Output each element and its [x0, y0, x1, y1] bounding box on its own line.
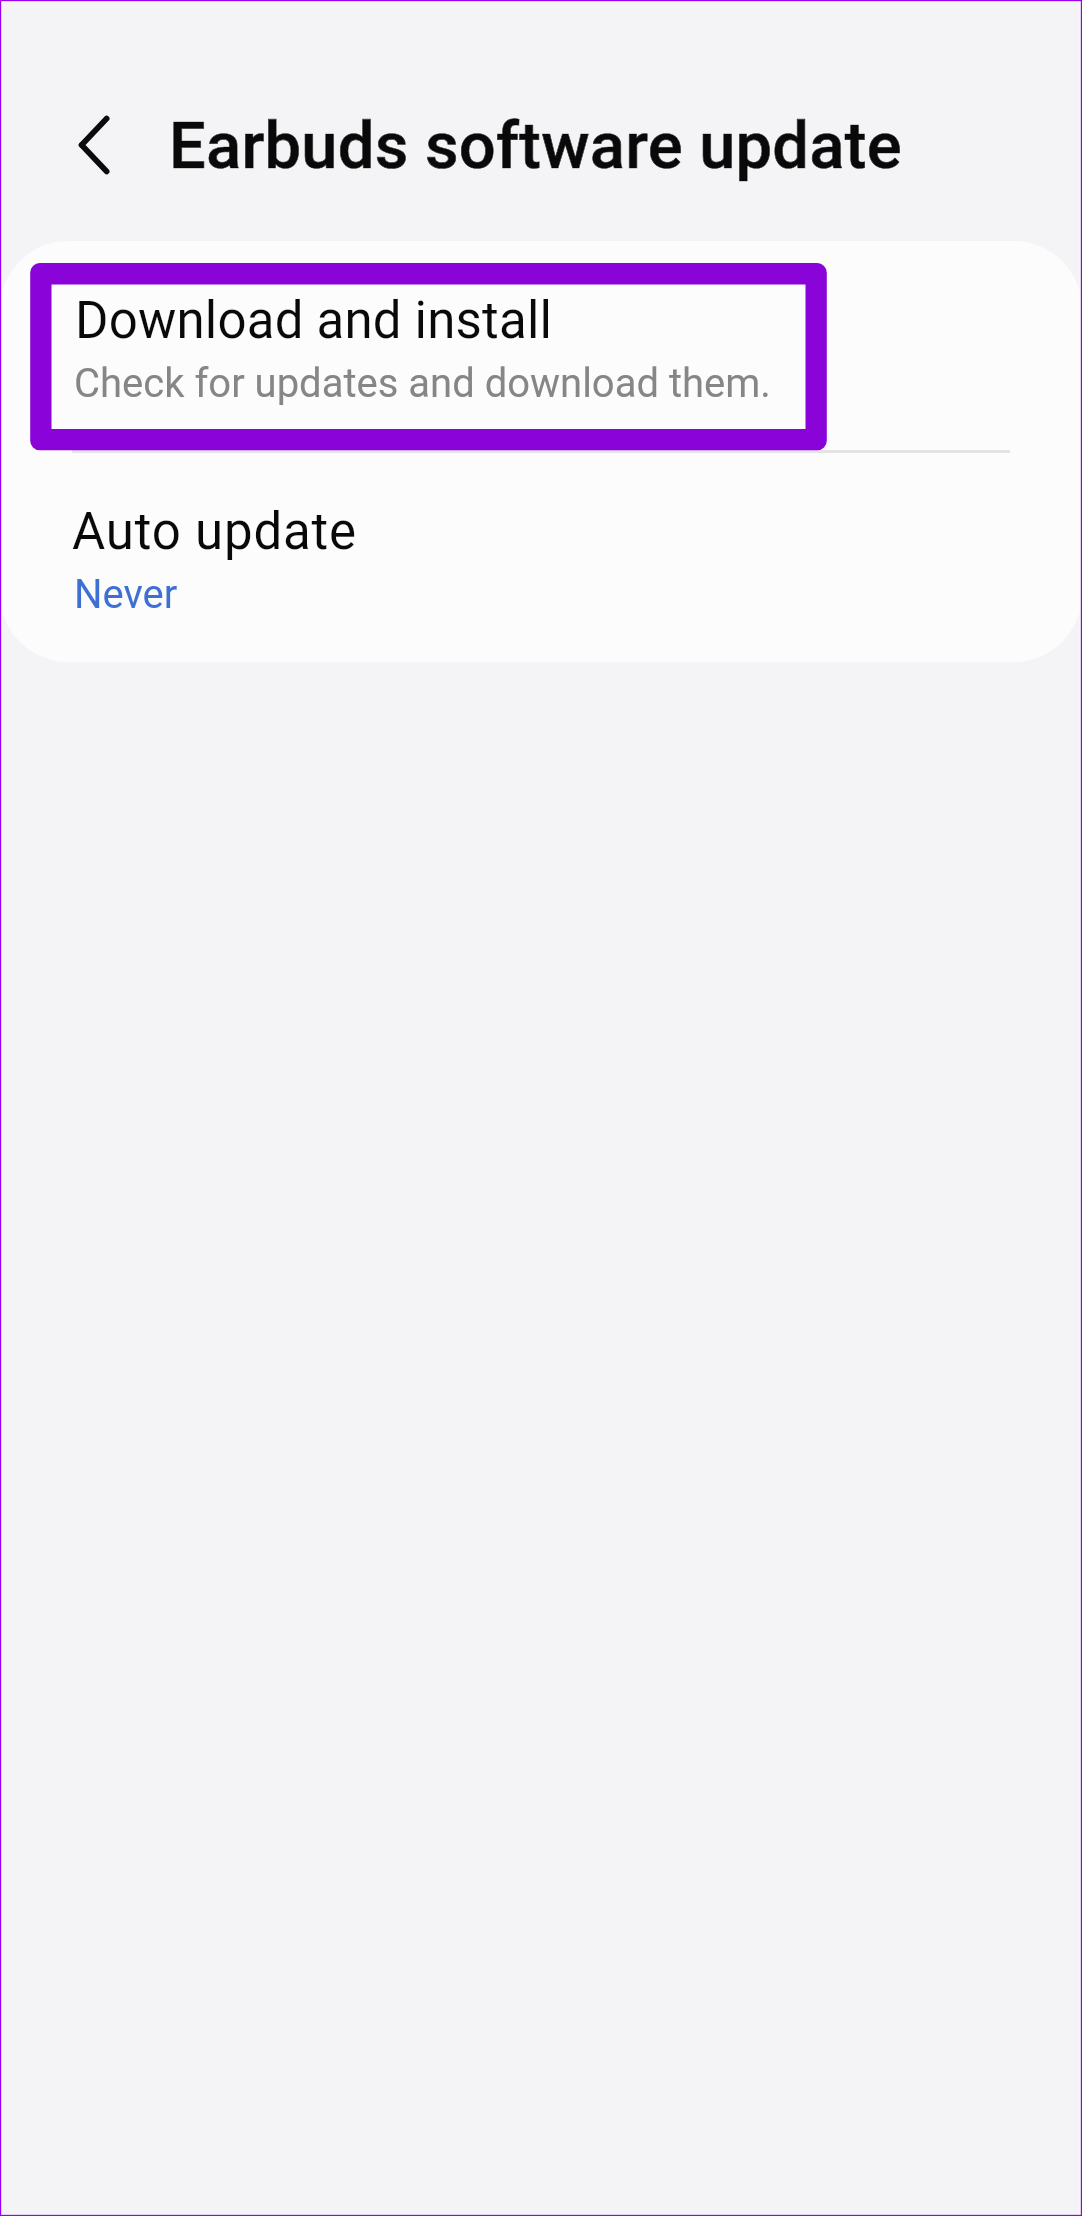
staticText: Check for updates and download them. — [74, 361, 771, 407]
staticText: Auto update — [72, 503, 357, 561]
button[interactable]: Auto update — [0, 452, 1082, 662]
staticText: Never — [74, 572, 178, 618]
button[interactable]: Navigate up — [58, 109, 130, 181]
staticText: Earbuds software update — [169, 108, 902, 184]
staticText: Download and install — [75, 292, 553, 350]
staticText: Earbuds software update — [169, 108, 902, 184]
button[interactable]: Download and install — [0, 241, 1082, 450]
